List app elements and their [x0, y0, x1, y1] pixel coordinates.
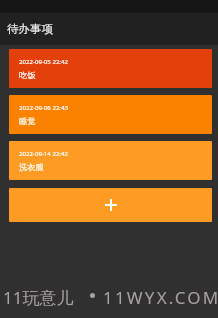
staticText: 吃饭: [19, 70, 36, 80]
button[interactable]: 2022-09-06 22:43: [9, 95, 212, 134]
staticText: 洗衣服: [19, 162, 44, 172]
button[interactable]: 2022-09-05 22:42: [9, 49, 212, 88]
staticText: 11玩意儿: [3, 286, 74, 309]
button[interactable]: 2022-09-14 22:42: [9, 141, 212, 180]
staticText: 11WYX.COM: [103, 286, 218, 309]
staticText: 2022-09-06 22:43: [19, 103, 68, 111]
staticText: 2022-09-14 22:42: [19, 149, 68, 157]
button[interactable]: Add new todo: [9, 188, 212, 222]
staticText: 睡觉: [19, 116, 36, 126]
staticText: 2022-09-05 22:42: [19, 57, 68, 65]
staticText: 待办事项: [7, 22, 53, 36]
